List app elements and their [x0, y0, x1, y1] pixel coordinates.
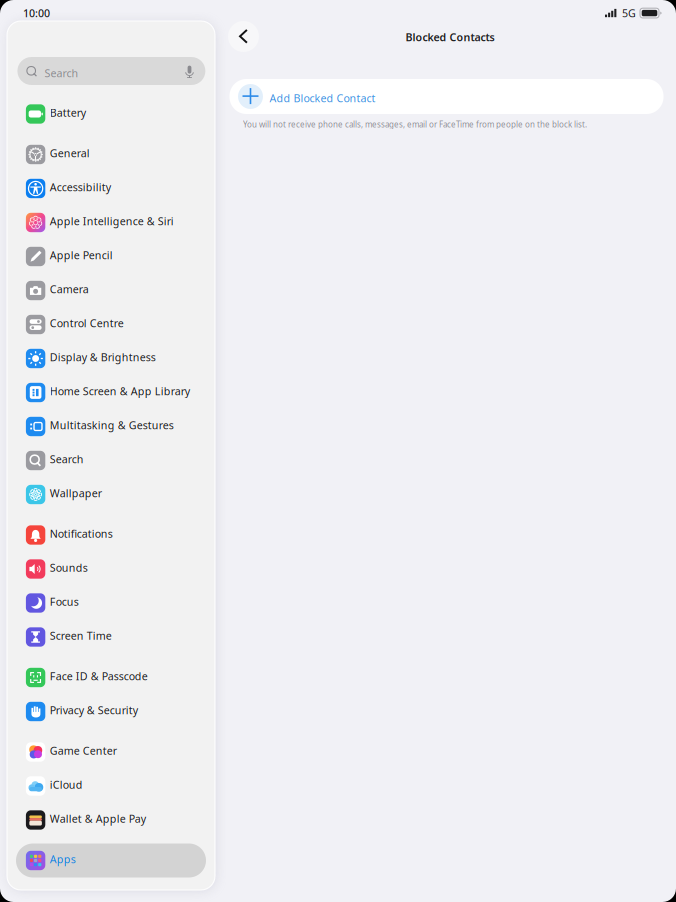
- staticText: Face ID & Passcode: [50, 669, 148, 683]
- button[interactable]: Battery: [16, 97, 206, 131]
- staticText: Control Centre: [50, 316, 124, 330]
- button[interactable]: Apple Pencil: [16, 239, 206, 273]
- staticText: Display & Brightness: [50, 350, 156, 364]
- staticText: Home Screen & App Library: [50, 384, 190, 398]
- button[interactable]: Back: [228, 21, 259, 52]
- staticText: Search: [50, 452, 84, 466]
- staticText: Privacy & Security: [50, 703, 138, 717]
- button[interactable]: Control Centre: [16, 307, 206, 341]
- button[interactable]: Game Center: [16, 735, 206, 769]
- button[interactable]: Add Blocked Contact: [229, 79, 663, 114]
- staticText: Focus: [50, 595, 79, 609]
- button[interactable]: Search: [16, 443, 206, 477]
- staticText: Notifications: [50, 527, 113, 541]
- button[interactable]: Camera: [16, 273, 206, 307]
- button[interactable]: Display & Brightness: [16, 341, 206, 375]
- staticText: Blocked Contacts: [405, 30, 494, 44]
- staticText: Multitasking & Gestures: [50, 418, 174, 432]
- button[interactable]: Screen Time: [16, 620, 206, 654]
- button[interactable]: Home Screen & App Library: [16, 375, 206, 409]
- staticText: Battery: [50, 106, 86, 120]
- staticText: Wallpaper: [50, 486, 102, 500]
- staticText: Accessibility: [50, 180, 111, 194]
- staticText: Wallet & Apple Pay: [50, 812, 146, 826]
- staticText: Search: [44, 66, 78, 80]
- staticText: General: [50, 146, 90, 160]
- staticText: 5G: [622, 6, 636, 20]
- button[interactable]: Face ID & Passcode: [16, 660, 206, 694]
- staticText: Add Blocked Contact: [269, 91, 375, 105]
- staticText: Apple Pencil: [50, 248, 113, 262]
- button[interactable]: Accessibility: [16, 171, 206, 205]
- button[interactable]: Privacy & Security: [16, 694, 206, 728]
- staticText: 10:00: [23, 6, 50, 20]
- staticText: Game Center: [50, 744, 117, 758]
- staticText: You will not receive phone calls, messag…: [243, 119, 587, 130]
- button[interactable]: Apps: [16, 843, 206, 877]
- staticText: Sounds: [50, 561, 88, 575]
- button[interactable]: Wallet & Apple Pay: [16, 803, 206, 837]
- staticText: Apps: [50, 852, 76, 866]
- staticText: iCloud: [50, 778, 83, 792]
- button[interactable]: Apple Intelligence & Siri: [16, 205, 206, 239]
- button[interactable]: iCloud: [16, 769, 206, 803]
- staticText: Apple Intelligence & Siri: [50, 214, 174, 228]
- button[interactable]: General: [16, 137, 206, 171]
- staticText: Screen Time: [50, 629, 112, 643]
- button[interactable]: Sounds: [16, 552, 206, 586]
- button[interactable]: Notifications: [16, 518, 206, 552]
- staticText: Camera: [50, 282, 89, 296]
- button[interactable]: Multitasking & Gestures: [16, 409, 206, 443]
- button[interactable]: Wallpaper: [16, 477, 206, 511]
- button[interactable]: Focus: [16, 586, 206, 620]
